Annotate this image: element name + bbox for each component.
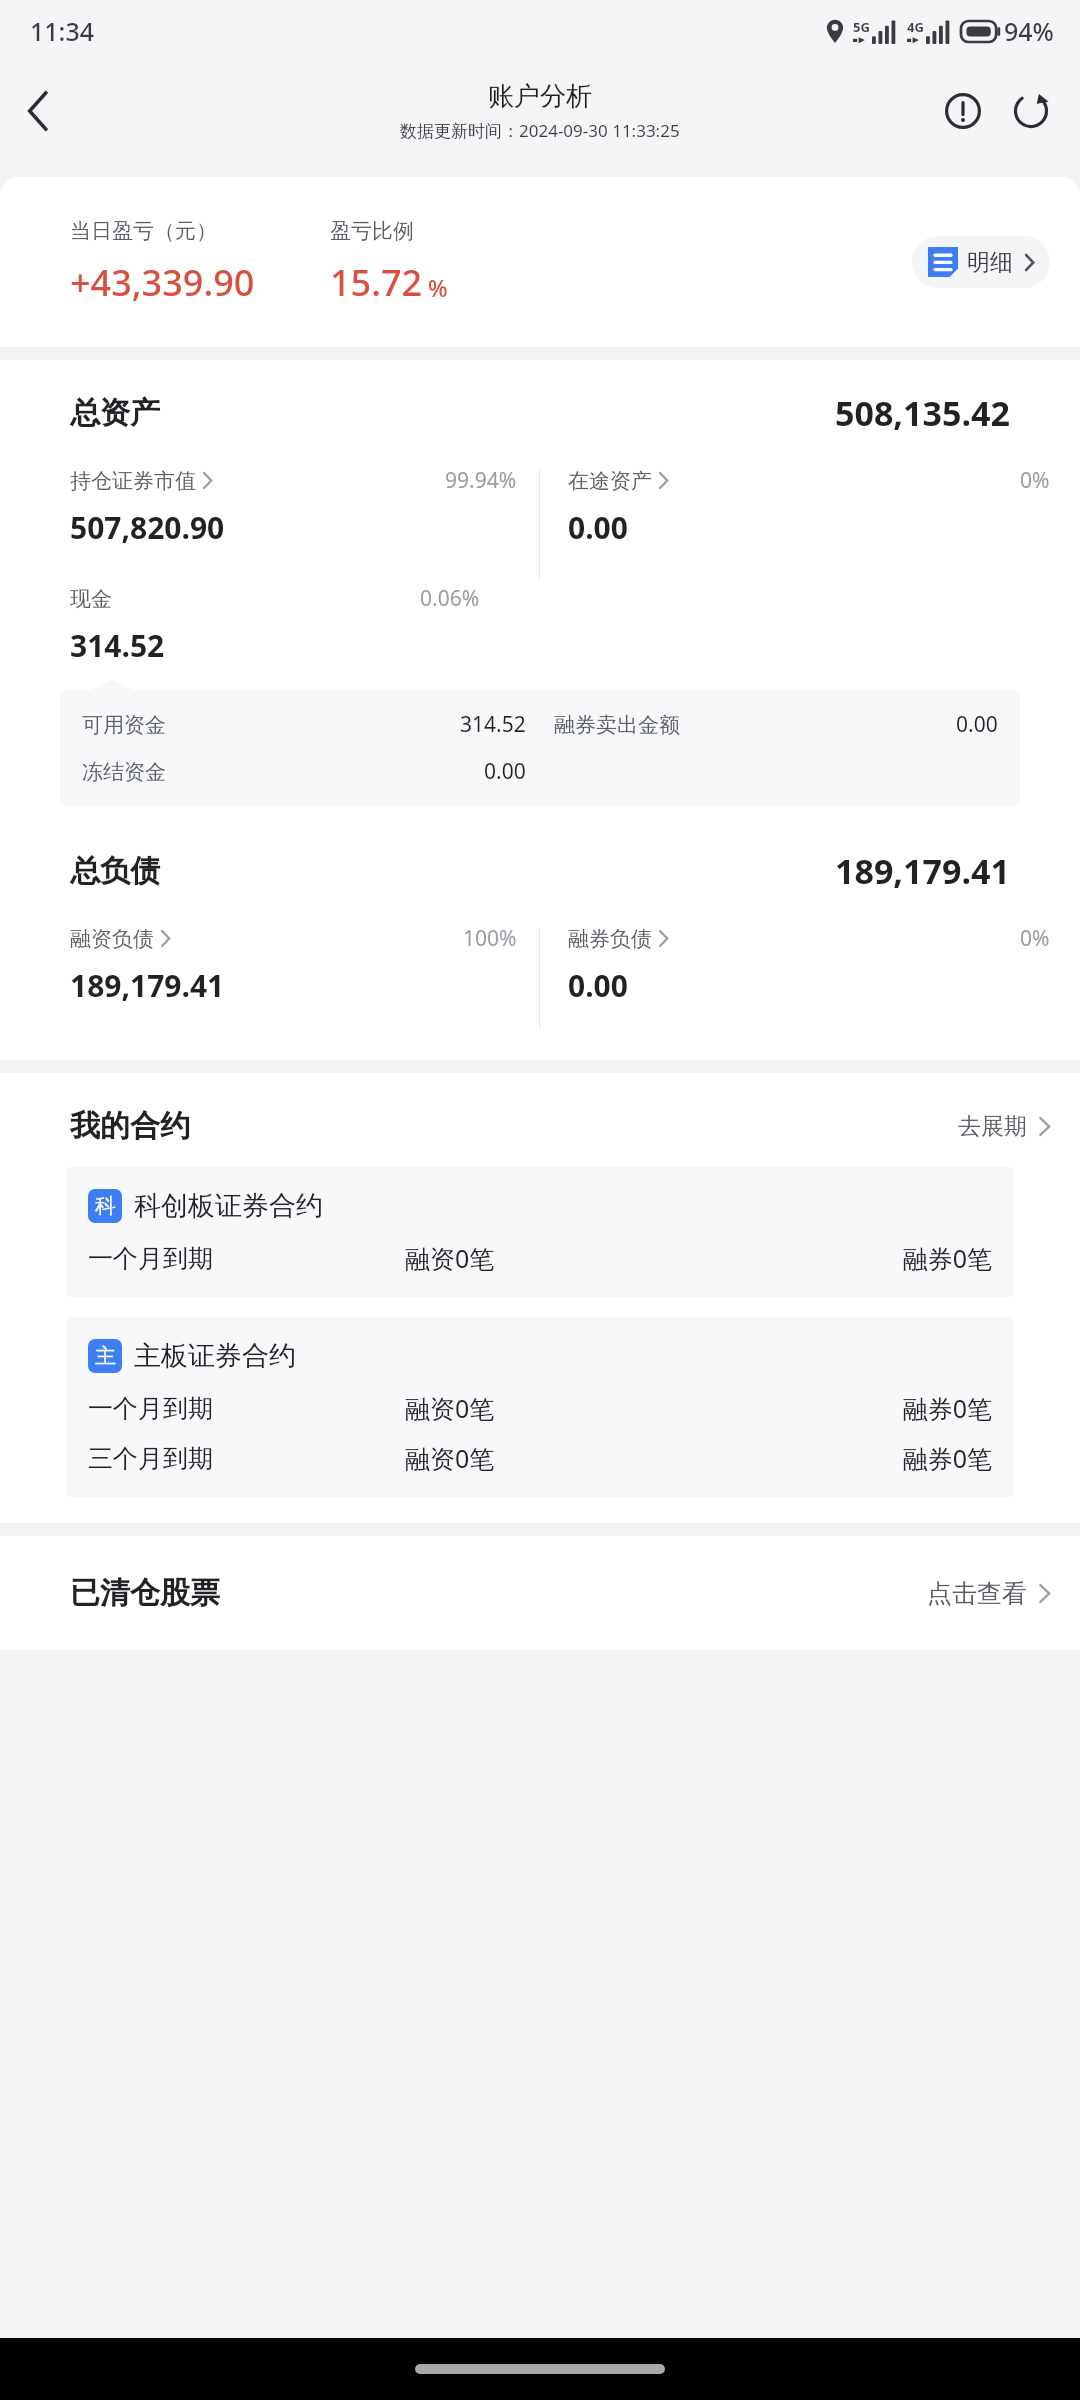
staticText: 0.06% (420, 584, 480, 613)
staticText: 0.00 (956, 710, 998, 739)
staticText: 94% (1004, 14, 1054, 48)
staticText: 点击查看 (927, 1578, 1027, 1609)
staticText: 融券0笔 (722, 1391, 992, 1425)
staticText: 科创板证券合约 (134, 1189, 323, 1223)
staticText: 11:34 (30, 14, 95, 48)
button[interactable]: 明细 (912, 236, 1050, 288)
staticText: 189,179.41 (835, 848, 1010, 894)
staticText: 一个月到期 (88, 1393, 405, 1424)
button[interactable]: 已清仓股票 (0, 1536, 1080, 1650)
staticText: 508,135.42 (835, 390, 1010, 436)
staticText: 融资0笔 (405, 1241, 722, 1275)
staticText: 一个月到期 (88, 1243, 405, 1274)
staticText: 融资0笔 (405, 1391, 722, 1425)
staticText: 314.52 (460, 710, 526, 739)
staticText: 当日盈亏（元） (70, 218, 217, 244)
staticText: 0% (1020, 466, 1050, 495)
button[interactable]: Info (936, 84, 990, 138)
staticText: 507,820.90 (70, 507, 225, 548)
staticText: 账户分析 (488, 80, 592, 113)
staticText: 三个月到期 (88, 1443, 405, 1474)
button[interactable]: 在途资产 (540, 466, 1080, 584)
staticText: 融资负债 (70, 926, 154, 952)
staticText: 0.00 (568, 507, 628, 548)
staticText: 在途资产 (568, 468, 652, 494)
staticText: 0.00 (484, 757, 526, 786)
staticText: 0% (1020, 924, 1050, 953)
staticText: 融资0笔 (405, 1441, 722, 1475)
staticText: 去展期 (958, 1112, 1027, 1141)
staticText: 科 (95, 1193, 116, 1219)
staticText: 融券负债 (568, 926, 652, 952)
staticText: 0.00 (568, 965, 628, 1006)
button[interactable]: Refresh (1004, 84, 1058, 138)
staticText: 数据更新时间：2024-09-30 11:33:25 (400, 119, 680, 142)
staticText: 可用资金 (82, 712, 166, 738)
staticText: 4G (907, 18, 924, 36)
staticText: 主板证券合约 (134, 1339, 296, 1373)
staticText: 冻结资金 (82, 759, 166, 785)
staticText: 融券卖出金额 (554, 712, 680, 738)
staticText: 主 (95, 1343, 116, 1369)
staticText: 现金 (70, 586, 112, 612)
button[interactable]: Back (10, 83, 66, 139)
button[interactable]: 融资负债 (0, 924, 539, 1034)
button[interactable]: 科 (66, 1167, 1014, 1297)
staticText: 189,179.41 (70, 965, 225, 1006)
staticText: 融券0笔 (722, 1441, 992, 1475)
button[interactable]: 融券负债 (540, 924, 1080, 1034)
button[interactable]: 总负债 (0, 840, 1080, 902)
staticText: 已清仓股票 (70, 1574, 220, 1612)
staticText: 5G (853, 18, 870, 36)
button[interactable]: 持仓证券市值 (0, 466, 539, 584)
staticText: 盈亏比例 (330, 218, 414, 244)
staticText: 15.72 (330, 258, 423, 307)
button[interactable]: 总资产 (0, 382, 1080, 444)
button[interactable]: 主 (66, 1317, 1014, 1497)
staticText: 我的合约 (70, 1107, 190, 1145)
staticText: 99.94% (445, 466, 517, 495)
staticText: 314.52 (70, 625, 165, 666)
staticText: 明细 (967, 248, 1013, 277)
staticText: 融券0笔 (722, 1241, 992, 1275)
staticText: 持仓证券市值 (70, 468, 196, 494)
staticText: % (428, 272, 448, 303)
button[interactable]: 我的合约 (0, 1073, 1080, 1167)
staticText: 100% (463, 924, 517, 953)
staticText: 总资产 (70, 394, 160, 432)
staticText: 总负债 (70, 852, 160, 890)
staticText: +43,339.90 (70, 258, 255, 307)
